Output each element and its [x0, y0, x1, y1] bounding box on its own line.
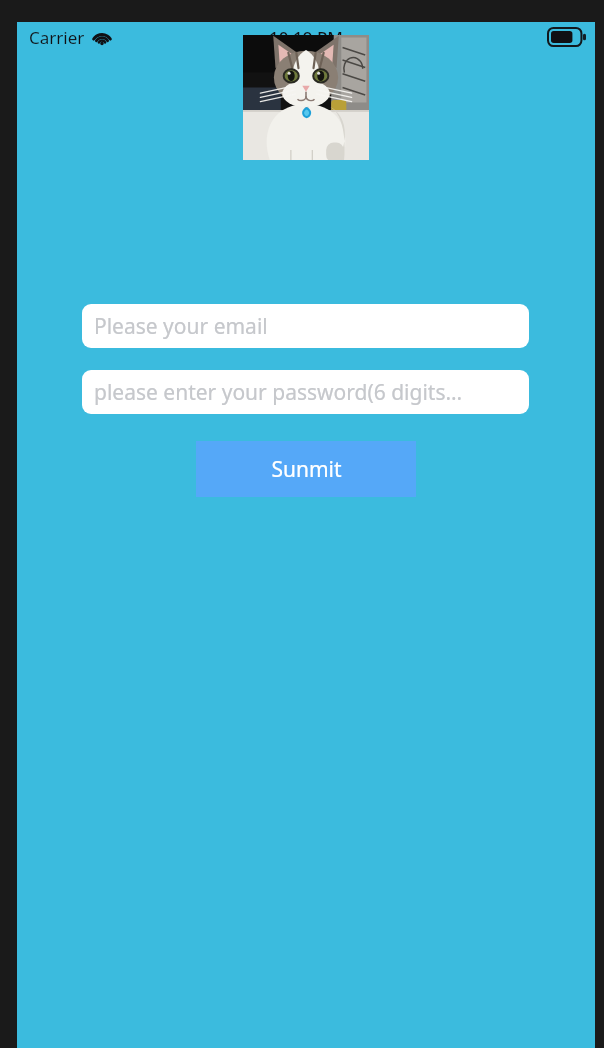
- staticText: Sunmit: [271, 455, 342, 484]
- button[interactable]: Please your email: [82, 304, 529, 348]
- staticText: please enter your password(6 digits…: [94, 378, 463, 407]
- staticText: Carrier: [29, 26, 85, 49]
- button[interactable]: please enter your password(6 digits…: [82, 370, 529, 414]
- staticText: 10:19 PM: [269, 26, 343, 49]
- button[interactable]: Sunmit: [196, 441, 416, 497]
- staticText: Please your email: [94, 312, 268, 341]
- other: Cat photo: [243, 35, 369, 160]
